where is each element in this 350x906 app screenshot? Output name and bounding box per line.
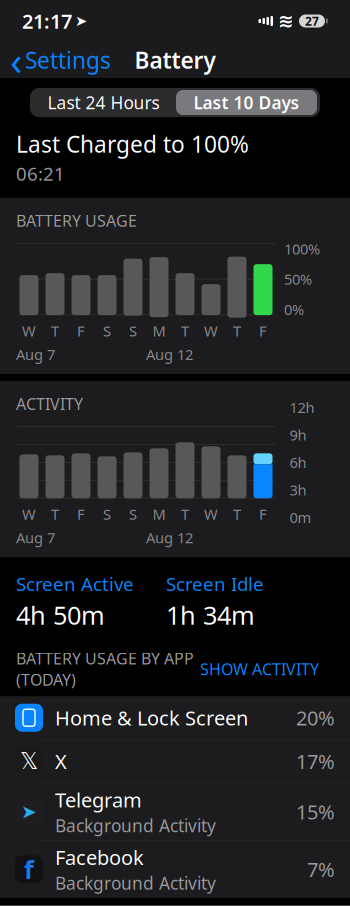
staticText: 9h [289,425,306,445]
staticText: 𝕏 [20,748,38,774]
staticText: T [51,321,59,341]
staticText: Battery [134,45,215,75]
staticText: S [129,504,137,524]
button[interactable]: ‹ [0,41,121,79]
staticText: Screen Active [16,571,134,596]
staticText: T [181,504,189,524]
staticText: T [51,504,59,524]
staticText: S [129,321,137,341]
staticText: ≋ [278,10,294,32]
staticText: ‹ [10,33,22,86]
staticText: Background Activity [55,814,216,837]
staticText: T [181,321,189,341]
staticText: 17% [296,748,335,774]
staticText: 100% [284,239,320,259]
staticText: M [152,504,165,524]
staticText: X [55,748,67,774]
staticText: Aug 12 [146,345,193,364]
staticText: W [204,504,218,524]
staticText: W [22,321,36,341]
staticText: S [103,504,111,524]
staticText: S [103,321,111,341]
staticText: Background Activity [55,871,216,894]
staticText: ➤ [75,13,87,29]
staticText: 20% [296,704,335,731]
staticText: Aug 7 [16,528,55,547]
staticText: Last 24 Hours [47,91,159,114]
staticText: 15% [296,798,335,825]
staticText: 06:21 [16,161,65,186]
button[interactable]: Last 24 Hours [33,90,174,115]
button[interactable]: Home & Lock Screen [0,696,350,740]
staticText: 6h [289,453,306,472]
staticText: 12h [289,398,314,417]
staticText: 50% [284,269,312,289]
staticText: Last Charged to 100% [16,129,249,159]
button[interactable]: 𝕏 [0,740,350,783]
staticText: F [259,321,267,341]
staticText: F [77,321,85,341]
staticText: ➤ [21,801,37,822]
staticText: F [77,504,85,524]
staticText: BATTERY USAGE [16,210,137,231]
staticText: 0m [289,508,311,527]
staticText: T [233,504,241,524]
staticText: SHOW ACTIVITY [200,658,319,680]
staticText: f [24,852,34,886]
staticText: Screen Idle [166,571,264,596]
staticText: Settings [25,45,111,75]
staticText: Telegram [55,786,142,813]
staticText: Home & Lock Screen [55,704,248,731]
staticText: T [233,321,241,341]
staticText: Last 10 Days [193,91,299,114]
staticText: Aug 12 [146,528,193,547]
staticText: BATTERY USAGE BY APP (TODAY) [16,648,194,690]
staticText: W [22,504,36,524]
staticText: Aug 7 [16,345,55,364]
staticText: 7% [307,856,335,882]
staticText: ACTIVITY [16,393,83,414]
staticText: 1h 34m [166,598,255,632]
button[interactable]: f [0,841,350,898]
staticText: F [259,504,267,524]
button[interactable]: ➤ [0,783,350,841]
staticText: 0% [284,300,304,319]
staticText: M [152,321,165,341]
staticText: W [204,321,218,341]
staticText: 21:17 [22,8,72,34]
button[interactable]: SHOW ACTIVITY [200,658,319,680]
staticText: 3h [289,480,306,500]
staticText: Facebook [55,844,144,870]
staticText: 4h 50m [16,598,105,632]
staticText: 27 [305,13,319,29]
button[interactable]: Last 10 Days [176,90,317,115]
